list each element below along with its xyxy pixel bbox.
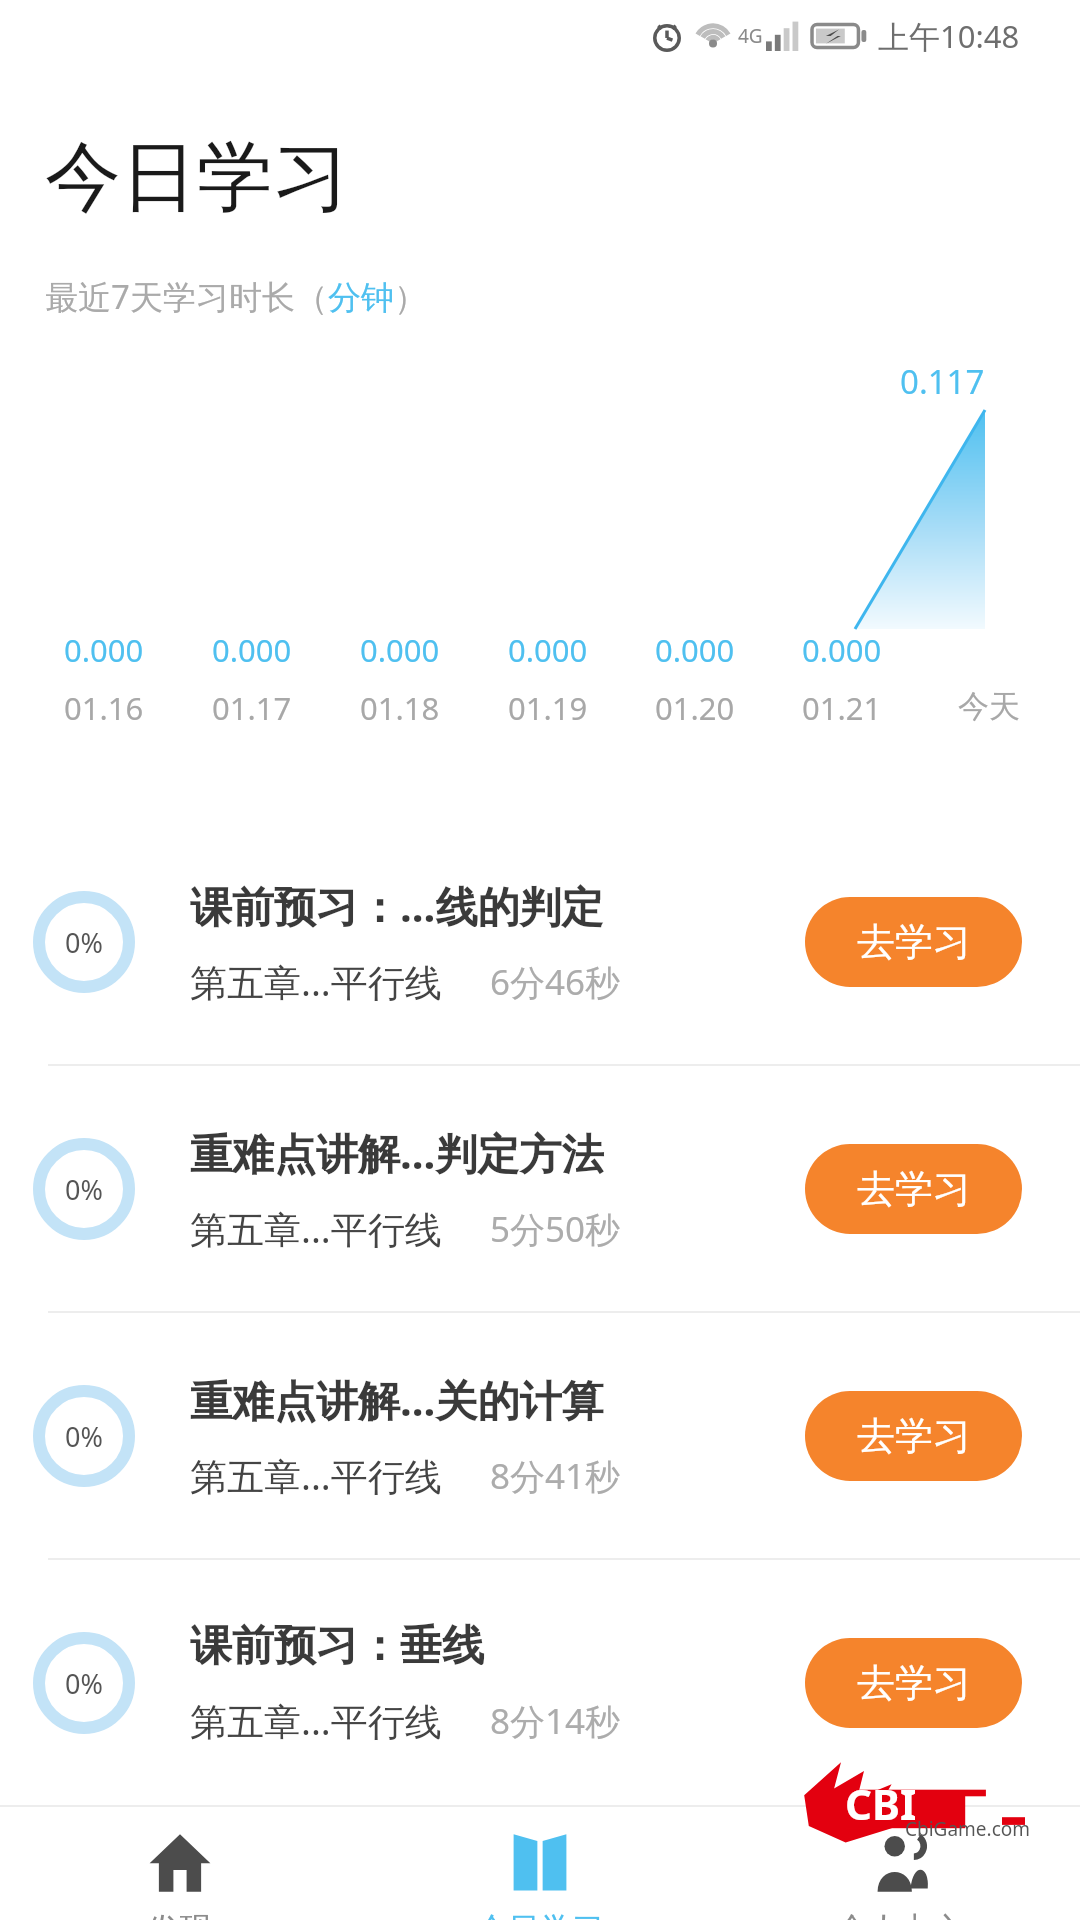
staticText: 01.20 <box>655 687 735 729</box>
button[interactable]: 0% <box>0 819 1080 1064</box>
staticText: 0.000 <box>655 629 735 671</box>
staticText: 个人中心 <box>836 1909 964 1920</box>
staticText: CbiGame.com <box>905 1816 1031 1842</box>
staticText: 0% <box>65 1171 103 1208</box>
staticText: 今日学习 <box>476 1909 604 1920</box>
staticText: 第五章...平行线 <box>190 1450 442 1501</box>
button[interactable]: 0% <box>0 1313 1080 1558</box>
button[interactable]: 发现 <box>0 1807 360 1920</box>
staticText: 第五章...平行线 <box>190 956 442 1007</box>
staticText: 0% <box>65 924 103 961</box>
staticText: 上午10:48 <box>878 15 1020 57</box>
button[interactable]: 个人中心 <box>720 1807 1080 1920</box>
staticText: 去学习 <box>857 1412 971 1460</box>
button[interactable]: 0% <box>0 1560 1080 1805</box>
staticText: 01.17 <box>212 687 292 729</box>
staticText: 0% <box>65 1665 103 1702</box>
staticText: 01.18 <box>360 687 440 729</box>
staticText: 5分50秒 <box>490 1205 621 1253</box>
staticText: 6分46秒 <box>490 958 621 1006</box>
staticText: 01.19 <box>508 687 588 729</box>
staticText: 去学习 <box>857 1659 971 1707</box>
other: 个人中心 <box>867 1829 933 1895</box>
staticText: 8分41秒 <box>490 1452 621 1500</box>
staticText: 0% <box>65 1418 103 1455</box>
button[interactable]: 今日学习 <box>360 1807 720 1920</box>
button[interactable]: 去学习 <box>805 1391 1022 1481</box>
staticText: 去学习 <box>857 1165 971 1213</box>
staticText: 0.117 <box>900 359 985 404</box>
staticText: 0.000 <box>212 629 292 671</box>
staticText: 0.000 <box>802 629 882 671</box>
staticText: 最近7天学习时长（分钟） <box>45 274 427 319</box>
staticText: 第五章...平行线 <box>190 1203 442 1254</box>
staticText: CBI <box>845 1775 917 1832</box>
staticText: 今日学习 <box>45 130 349 226</box>
staticText: 课前预习：...线的判定 <box>190 877 604 934</box>
staticText: 01.16 <box>64 687 144 729</box>
staticText: 0.000 <box>508 629 588 671</box>
staticText: 今天 <box>958 687 1020 726</box>
staticText: 01.21 <box>802 687 882 729</box>
staticText: 0.000 <box>360 629 440 671</box>
staticText: 去学习 <box>857 918 971 966</box>
staticText: 8分14秒 <box>490 1697 621 1745</box>
staticText: 发现 <box>148 1909 212 1920</box>
staticText: 重难点讲解...关的计算 <box>190 1371 604 1428</box>
staticText: 课前预习：垂线 <box>190 1620 484 1673</box>
button[interactable]: 去学习 <box>805 1144 1022 1234</box>
staticText: 4G <box>738 23 763 49</box>
button[interactable]: 去学习 <box>805 897 1022 987</box>
staticText: 0.000 <box>64 629 144 671</box>
button[interactable]: 去学习 <box>805 1638 1022 1728</box>
other: 发现 <box>147 1829 213 1895</box>
staticText: 第五章...平行线 <box>190 1695 442 1746</box>
button[interactable]: 0% <box>0 1066 1080 1311</box>
other: 今日学习 <box>507 1829 573 1895</box>
staticText: 重难点讲解...判定方法 <box>190 1124 604 1181</box>
